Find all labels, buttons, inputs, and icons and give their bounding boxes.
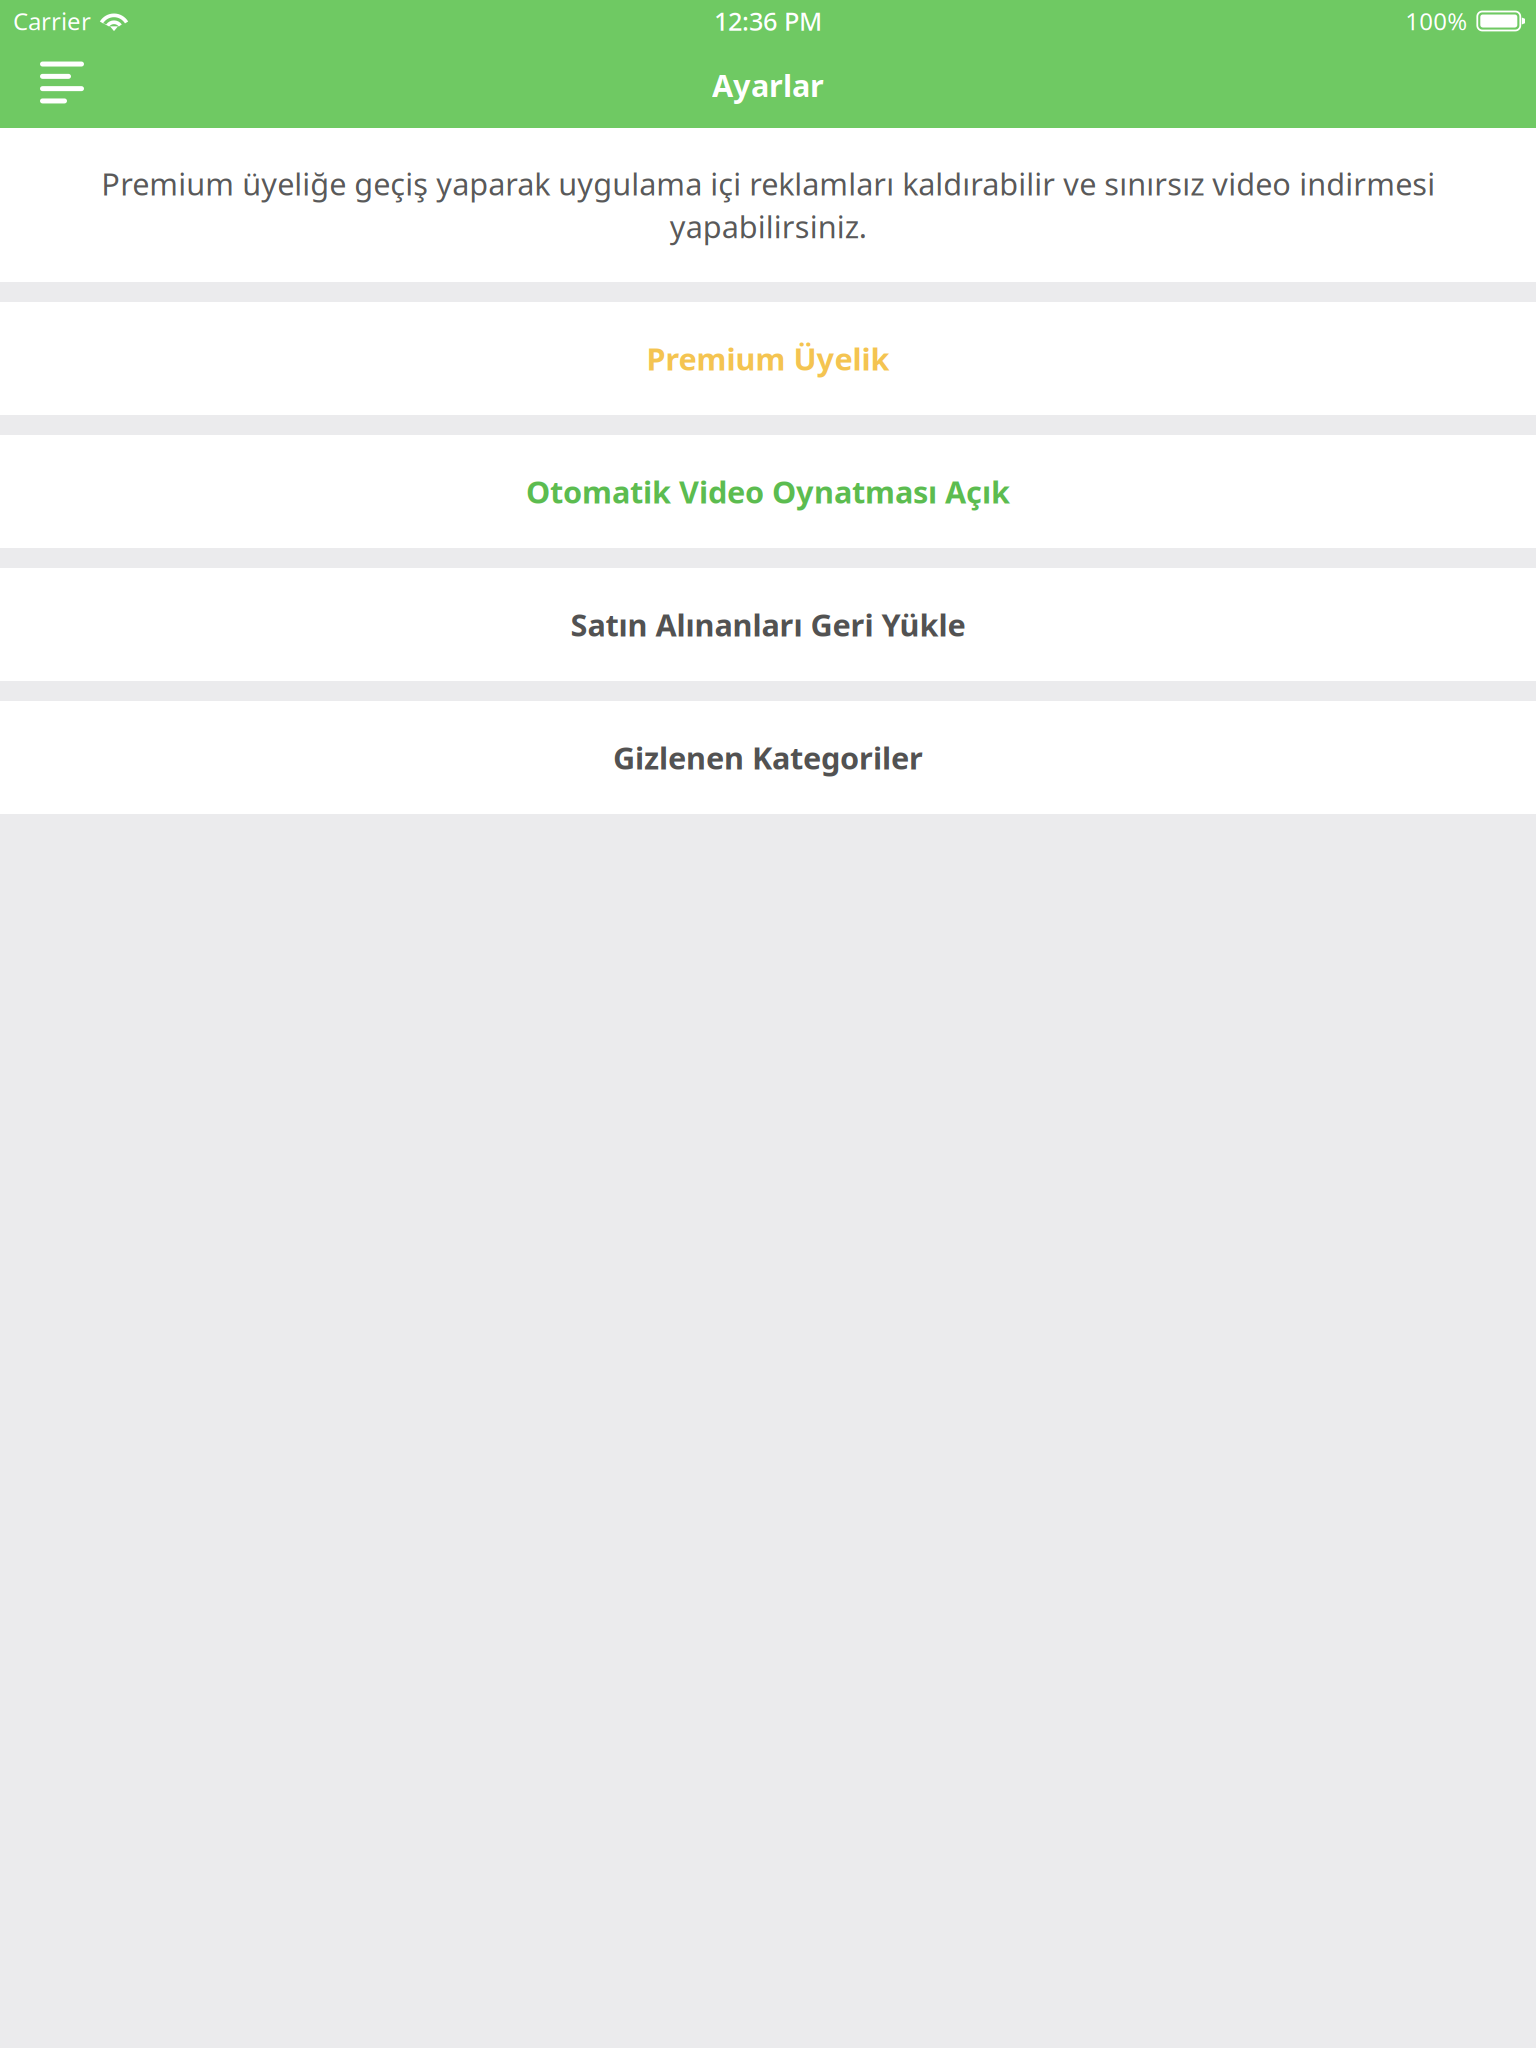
staticText: 100% [1405,5,1467,37]
staticText: Ayarlar [712,65,824,105]
button[interactable]: Premium Üyelik [0,302,1536,415]
staticText: Carrier [13,5,91,37]
staticText: 12:36 PM [714,4,822,38]
button[interactable]: Gizlenen Kategoriler [0,701,1536,814]
button[interactable]: Satın Alınanları Geri Yükle [0,568,1536,681]
staticText: Gizlenen Kategoriler [613,737,923,778]
button[interactable]: Otomatik Video Oynatması Açık [0,435,1536,548]
staticText: Premium üyeliğe geçiş yaparak uygulama i… [101,163,1435,247]
staticText: Otomatik Video Oynatması Açık [526,471,1010,512]
staticText: Premium Üyelik [646,338,889,379]
button[interactable]: Menu [0,42,112,128]
staticText: Satın Alınanları Geri Yükle [570,604,965,645]
